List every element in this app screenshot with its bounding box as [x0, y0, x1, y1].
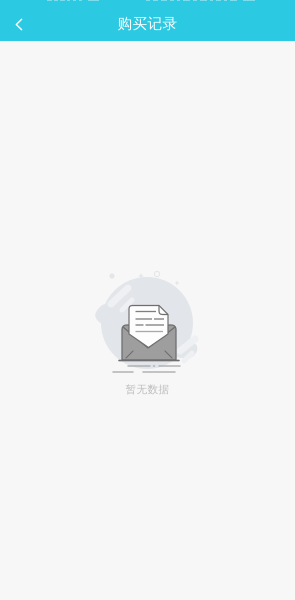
- button[interactable]: Back: [3, 7, 35, 41]
- staticText: 暂无数据: [125, 383, 169, 396]
- staticText: 购买记录: [117, 14, 177, 32]
